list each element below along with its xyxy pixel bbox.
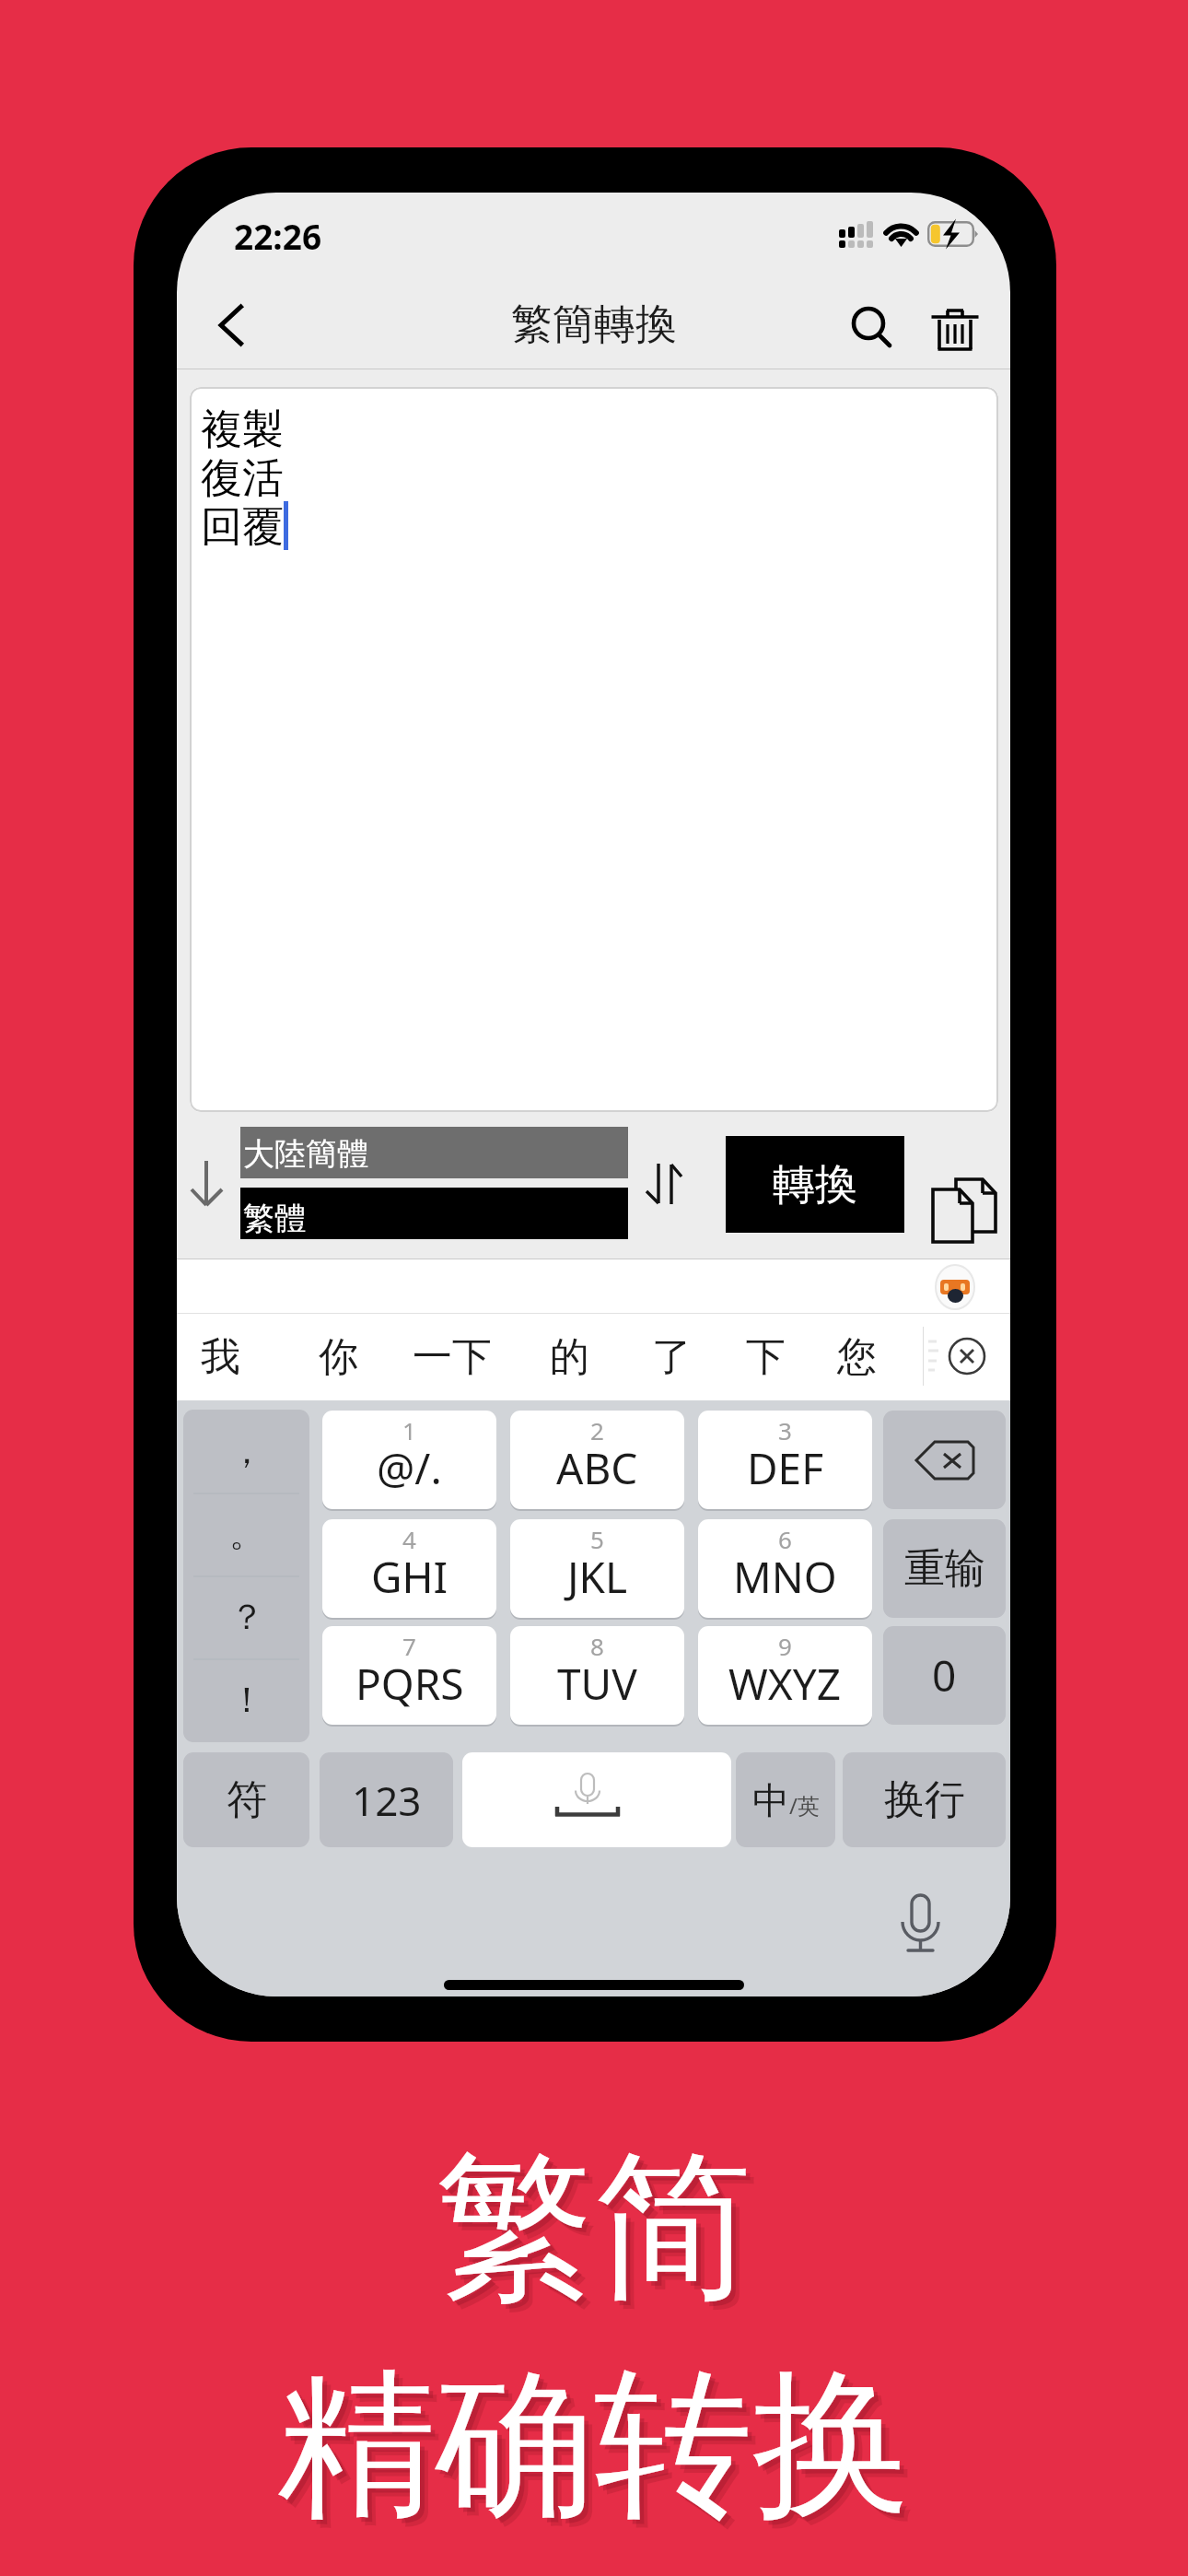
button[interactable]: ？ bbox=[183, 1575, 309, 1658]
staticText: 你 bbox=[319, 1332, 358, 1382]
button[interactable]: 4 bbox=[322, 1519, 496, 1618]
button[interactable]: 轉換 bbox=[726, 1136, 904, 1233]
button[interactable]: 9 bbox=[698, 1626, 872, 1725]
button[interactable]: Back bbox=[193, 288, 267, 362]
button[interactable]: 符 bbox=[183, 1752, 309, 1847]
button[interactable]: Copy bbox=[923, 1169, 1006, 1252]
button[interactable]: 8 bbox=[510, 1626, 684, 1725]
staticText: 復活 bbox=[201, 452, 284, 501]
button[interactable]: 7 bbox=[322, 1626, 496, 1725]
staticText: JKL bbox=[567, 1548, 628, 1606]
staticText: 4 bbox=[402, 1523, 416, 1555]
button[interactable]: 我 bbox=[200, 1314, 240, 1400]
staticText: 您 bbox=[837, 1332, 877, 1382]
button[interactable]: 1 bbox=[322, 1411, 496, 1509]
button[interactable]: 您 bbox=[836, 1314, 877, 1400]
staticText: 我 bbox=[201, 1332, 240, 1382]
staticText: @/. bbox=[377, 1439, 442, 1497]
staticText: 5 bbox=[590, 1523, 604, 1555]
staticText: 。 bbox=[229, 1512, 264, 1556]
staticText: 22:26 bbox=[234, 213, 322, 259]
button[interactable]: ， bbox=[183, 1410, 309, 1493]
staticText: PQRS bbox=[355, 1655, 464, 1713]
button[interactable]: 你 bbox=[318, 1314, 358, 1400]
staticText: 大陸簡體 bbox=[243, 1134, 368, 1174]
staticText: 繁简 bbox=[440, 2133, 757, 2333]
button[interactable]: Swap languages bbox=[633, 1147, 690, 1224]
button[interactable]: 3 bbox=[698, 1411, 872, 1509]
staticText: /英 bbox=[789, 1790, 820, 1821]
staticText: TUV bbox=[557, 1655, 637, 1713]
staticText: MNO bbox=[733, 1548, 837, 1606]
button[interactable]: 重输 bbox=[883, 1519, 1006, 1618]
staticText: 繁體 bbox=[243, 1199, 306, 1238]
staticText: 0 bbox=[932, 1646, 957, 1704]
button[interactable]: 0 bbox=[883, 1626, 1006, 1725]
staticText: 精确转换 bbox=[282, 2350, 915, 2550]
button[interactable]: Delete bbox=[914, 288, 996, 371]
staticText: 123 bbox=[352, 1773, 422, 1828]
staticText: 8 bbox=[590, 1630, 604, 1662]
button[interactable]: 换行 bbox=[843, 1752, 1006, 1847]
button[interactable]: ！ bbox=[183, 1658, 309, 1741]
staticText: GHI bbox=[371, 1548, 448, 1606]
button[interactable]: 繁體 bbox=[240, 1188, 628, 1239]
staticText: 精确转换 bbox=[285, 2354, 919, 2554]
staticText: WXYZ bbox=[728, 1655, 842, 1713]
staticText: 9 bbox=[778, 1630, 792, 1662]
button[interactable]: 6 bbox=[698, 1519, 872, 1618]
staticText: 精确转换 bbox=[277, 2346, 911, 2546]
button[interactable]: Clear bbox=[939, 1329, 995, 1384]
staticText: 一下 bbox=[413, 1332, 492, 1382]
staticText: 繁简 bbox=[436, 2128, 752, 2328]
staticText: 了 bbox=[652, 1332, 692, 1382]
staticText: ABC bbox=[556, 1439, 638, 1497]
staticText: 符 bbox=[227, 1774, 267, 1825]
staticText: 换行 bbox=[884, 1774, 965, 1825]
staticText: 7 bbox=[402, 1630, 416, 1662]
button[interactable]: Voice input bbox=[881, 1872, 964, 1973]
staticText: 轉換 bbox=[773, 1158, 857, 1212]
button[interactable]: Space bbox=[462, 1752, 731, 1847]
staticText: ？ bbox=[229, 1595, 264, 1639]
button[interactable]: 2 bbox=[510, 1411, 684, 1509]
button[interactable]: 了 bbox=[651, 1314, 692, 1400]
staticText: 1 bbox=[402, 1414, 416, 1446]
button[interactable]: 大陸簡體 bbox=[240, 1127, 628, 1178]
button[interactable]: 中 bbox=[736, 1752, 835, 1847]
button[interactable]: Convert direction bbox=[181, 1151, 234, 1219]
button[interactable]: Search bbox=[833, 288, 915, 371]
staticText: 2 bbox=[590, 1414, 604, 1446]
button[interactable]: 一下 bbox=[413, 1314, 492, 1400]
staticText: 3 bbox=[778, 1414, 792, 1446]
staticText: 的 bbox=[550, 1332, 589, 1382]
button[interactable]: 下 bbox=[745, 1314, 786, 1400]
button[interactable]: 。 bbox=[183, 1493, 309, 1575]
button[interactable]: Backspace bbox=[883, 1411, 1006, 1509]
staticText: 重输 bbox=[904, 1543, 985, 1594]
staticText: 繁簡轉換 bbox=[511, 299, 677, 351]
staticText: 複製 bbox=[201, 404, 284, 452]
staticText: 回覆 bbox=[201, 501, 284, 550]
button[interactable]: 5 bbox=[510, 1519, 684, 1618]
staticText: ！ bbox=[229, 1678, 264, 1722]
staticText: 6 bbox=[778, 1523, 792, 1555]
staticText: 繁简 bbox=[444, 2137, 761, 2336]
staticText: 下 bbox=[746, 1332, 786, 1382]
button[interactable]: 的 bbox=[549, 1314, 589, 1400]
staticText: ， bbox=[229, 1429, 264, 1473]
button[interactable]: Assistant bbox=[930, 1261, 980, 1313]
button[interactable]: 123 bbox=[320, 1752, 453, 1847]
staticText: DEF bbox=[747, 1439, 824, 1497]
staticText: 中 bbox=[752, 1777, 789, 1823]
